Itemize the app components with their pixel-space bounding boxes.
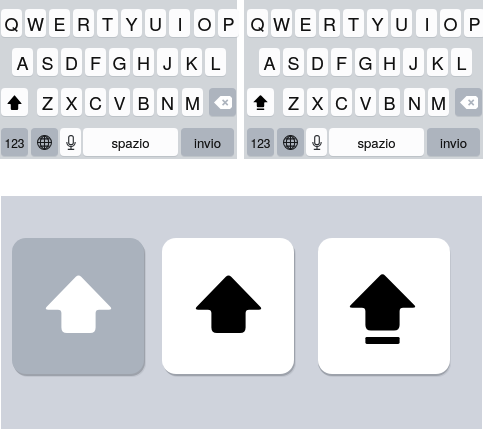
button[interactable]: G xyxy=(355,48,376,76)
staticText: B xyxy=(137,89,150,115)
button[interactable]: R xyxy=(73,9,94,37)
button[interactable]: Dictate xyxy=(306,128,327,156)
button[interactable]: Shift xyxy=(1,88,28,116)
button[interactable]: A xyxy=(259,48,280,76)
button[interactable]: N xyxy=(157,88,178,116)
button[interactable]: J xyxy=(157,48,178,76)
staticText: O xyxy=(197,10,212,36)
button[interactable]: W xyxy=(271,9,292,37)
button[interactable]: spazio xyxy=(83,128,178,156)
button[interactable]: Shift xyxy=(162,238,294,374)
staticText: W xyxy=(273,10,290,36)
button[interactable]: B xyxy=(133,88,154,116)
button[interactable]: L xyxy=(451,48,472,76)
staticText: U xyxy=(149,10,162,36)
button[interactable]: E xyxy=(295,9,316,37)
button[interactable]: S xyxy=(37,48,58,76)
staticText: Z xyxy=(42,89,53,115)
button[interactable]: R xyxy=(319,9,340,37)
button[interactable]: X xyxy=(307,88,328,116)
button[interactable]: D xyxy=(307,48,328,76)
button[interactable]: W xyxy=(25,9,46,37)
staticText: B xyxy=(383,89,396,115)
button[interactable]: F xyxy=(85,48,106,76)
button[interactable]: J xyxy=(403,48,424,76)
staticText: C xyxy=(335,89,348,115)
staticText: F xyxy=(90,49,101,75)
staticText: H xyxy=(383,49,396,75)
button[interactable]: Backspace xyxy=(455,88,482,116)
staticText: T xyxy=(348,10,359,36)
staticText: B xyxy=(383,89,396,115)
button[interactable]: Shift xyxy=(12,238,144,374)
button[interactable]: K xyxy=(427,48,448,76)
staticText: D xyxy=(65,49,78,75)
button[interactable]: M xyxy=(182,88,203,116)
button[interactable]: K xyxy=(181,48,202,76)
button[interactable]: Z xyxy=(37,88,58,116)
button[interactable]: Z xyxy=(283,88,304,116)
staticText: V xyxy=(113,89,126,115)
button[interactable]: C xyxy=(331,88,352,116)
staticText: V xyxy=(113,89,126,115)
staticText: G xyxy=(112,49,127,75)
button[interactable]: O xyxy=(440,9,461,37)
button[interactable]: Backspace xyxy=(209,88,236,116)
button[interactable]: V xyxy=(109,88,130,116)
button[interactable]: I xyxy=(416,9,437,37)
button[interactable]: O xyxy=(194,9,215,37)
button[interactable]: P xyxy=(218,9,239,37)
button[interactable]: Q xyxy=(1,9,22,37)
button[interactable]: U xyxy=(391,9,412,37)
button[interactable]: B xyxy=(379,88,400,116)
button[interactable]: H xyxy=(133,48,154,76)
button[interactable]: Y xyxy=(367,9,388,37)
button[interactable]: M xyxy=(428,88,449,116)
button[interactable]: L xyxy=(205,48,226,76)
button[interactable]: S xyxy=(283,48,304,76)
staticText: J xyxy=(163,49,172,75)
button[interactable]: Next keyboard xyxy=(277,128,304,156)
staticText: spazio xyxy=(111,133,150,152)
staticText: T xyxy=(102,10,113,36)
button[interactable]: Q xyxy=(247,9,268,37)
staticText: G xyxy=(112,49,127,75)
staticText: M xyxy=(185,89,200,115)
button[interactable]: 123 xyxy=(247,128,274,156)
button[interactable]: N xyxy=(404,88,425,116)
staticText: I xyxy=(177,10,183,36)
button[interactable]: invio xyxy=(427,128,480,156)
staticText: invio xyxy=(440,133,467,152)
button[interactable]: A xyxy=(12,48,33,76)
staticText: I xyxy=(424,10,430,36)
staticText: S xyxy=(287,49,300,75)
button[interactable]: Y xyxy=(121,9,142,37)
button[interactable]: invio xyxy=(181,128,234,156)
button[interactable]: P xyxy=(464,9,483,37)
button[interactable]: C xyxy=(85,88,106,116)
button[interactable]: D xyxy=(61,48,82,76)
staticText: C xyxy=(89,89,102,115)
button[interactable]: Shift xyxy=(318,238,450,374)
button[interactable]: H xyxy=(379,48,400,76)
button[interactable]: V xyxy=(355,88,376,116)
button[interactable]: U xyxy=(145,9,166,37)
button[interactable]: Dictate xyxy=(60,128,81,156)
button[interactable]: 123 xyxy=(1,128,28,156)
staticText: C xyxy=(89,89,102,115)
button[interactable]: T xyxy=(343,9,364,37)
button[interactable]: F xyxy=(331,48,352,76)
staticText: G xyxy=(358,49,373,75)
button[interactable]: G xyxy=(109,48,130,76)
staticText: Z xyxy=(288,89,299,115)
button[interactable]: E xyxy=(49,9,70,37)
staticText: E xyxy=(299,10,312,36)
staticText: Y xyxy=(371,10,384,36)
button[interactable]: T xyxy=(97,9,118,37)
staticText: Y xyxy=(125,10,138,36)
button[interactable]: Next keyboard xyxy=(31,128,58,156)
button[interactable]: I xyxy=(169,9,190,37)
button[interactable]: Shift xyxy=(247,88,274,116)
button[interactable]: spazio xyxy=(329,128,424,156)
button[interactable]: X xyxy=(61,88,82,116)
